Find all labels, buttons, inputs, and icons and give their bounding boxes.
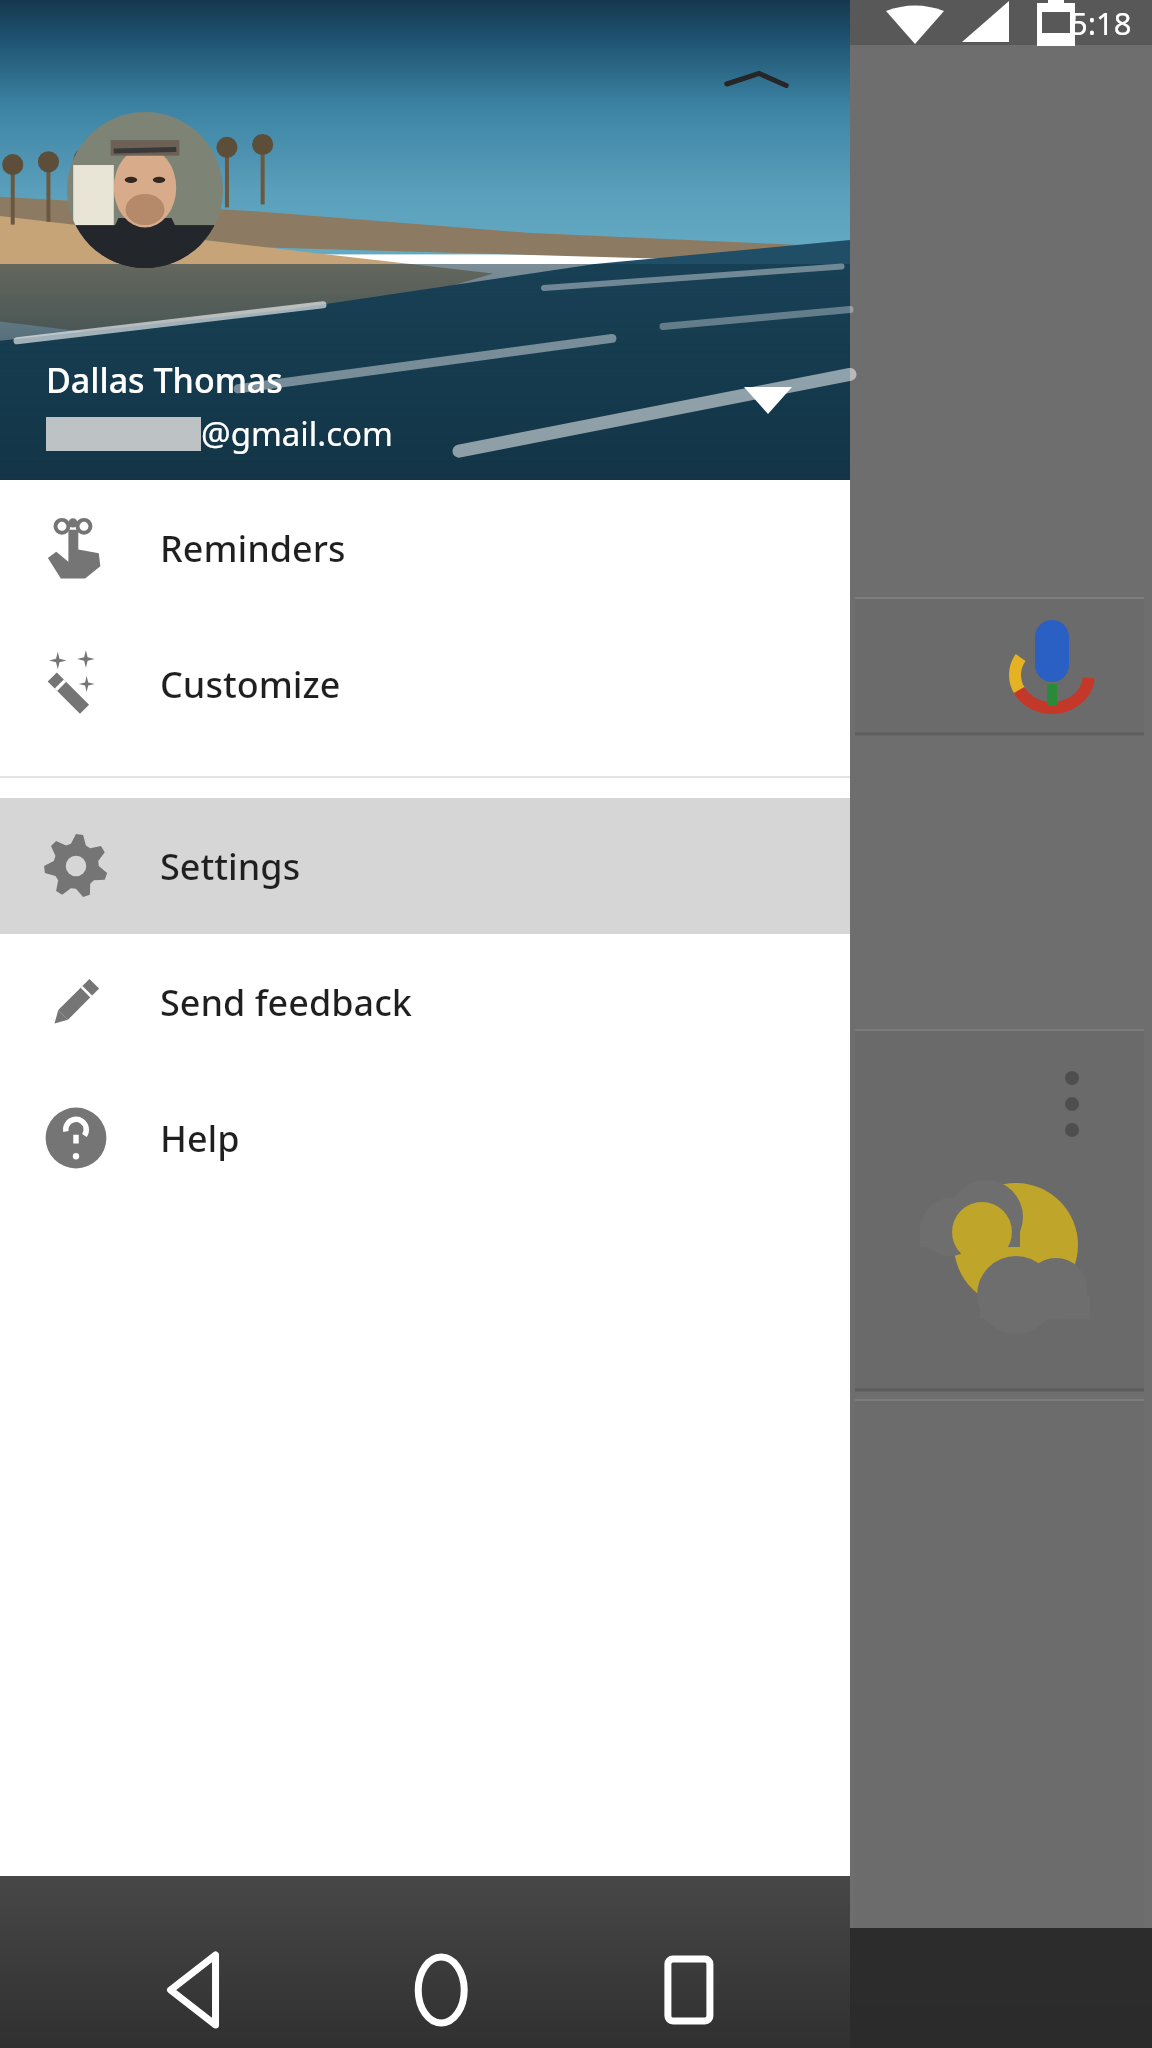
staticText: Reminders [160, 524, 346, 573]
button[interactable]: Recent apps [768, 1928, 1152, 2048]
button[interactable]: Home [384, 1928, 768, 2048]
staticText: Send feedback [160, 978, 412, 1027]
button[interactable]: Dallas Thomas [0, 0, 850, 480]
staticText: Settings [160, 842, 301, 891]
staticText: Customize [160, 660, 341, 709]
button[interactable]: Settings [0, 798, 850, 934]
button[interactable]: Reminders [0, 480, 850, 616]
button[interactable]: Customize [0, 616, 850, 752]
staticText: Dallas Thomas [46, 357, 283, 403]
button[interactable]: Send feedback [0, 934, 850, 1070]
button[interactable]: Back [0, 1928, 384, 2048]
staticText: @gmail.com [201, 411, 393, 456]
button[interactable]: Switch account [718, 358, 818, 442]
button[interactable]: Help [0, 1070, 850, 1206]
staticText: 5:18 [1070, 2, 1132, 44]
staticText: Help [160, 1114, 240, 1163]
